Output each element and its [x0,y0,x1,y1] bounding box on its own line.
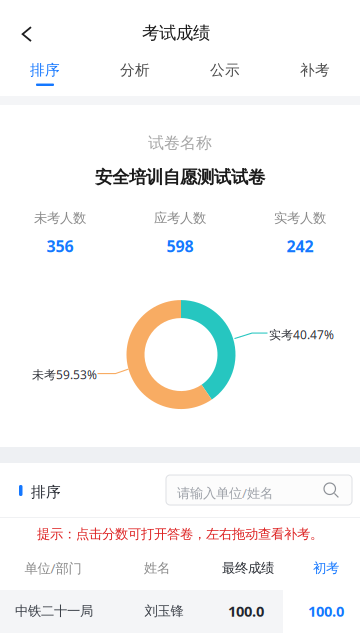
staticText: 应考人数 [154,210,206,226]
staticText: 100.0 [308,601,344,621]
staticText: 未考59.53% [32,367,97,382]
staticText: 排序 [30,61,60,79]
staticText: 356 [46,235,73,256]
staticText: 安全培训自愿测试试卷 [95,167,265,188]
staticText: 提示：点击分数可打开答卷，左右拖动查看补考。 [37,526,323,542]
staticText: 242 [286,235,313,256]
staticText: 实考40.47% [269,327,334,342]
staticText: 未考人数 [34,210,86,226]
staticText: 姓名 [144,560,170,576]
staticText: 考试成绩 [142,22,210,44]
staticText: 刘玉锋 [144,603,183,619]
staticText: 598 [166,235,193,256]
button[interactable]: 补考 [270,54,360,96]
button[interactable]: 分析 [90,54,180,96]
staticText: 最终成绩 [222,560,274,576]
staticText: 补考 [300,61,330,79]
staticText: 中铁二十一局 [15,603,93,619]
staticText: 初考 [313,560,339,576]
staticText: 单位/部门 [24,559,81,577]
staticText: 请输入单位/姓名 [177,484,273,502]
button[interactable]: 公示 [180,54,270,96]
button[interactable]: Back [5,12,49,56]
staticText: 100.0 [228,601,264,621]
staticText: 排序 [31,483,61,501]
button[interactable]: 请输入单位/姓名 [166,475,352,505]
staticText: 公示 [210,61,240,79]
staticText: 试卷名称 [148,133,212,153]
button[interactable]: 排序 [0,54,90,96]
staticText: 实考人数 [274,210,326,226]
staticText: 分析 [120,61,150,79]
